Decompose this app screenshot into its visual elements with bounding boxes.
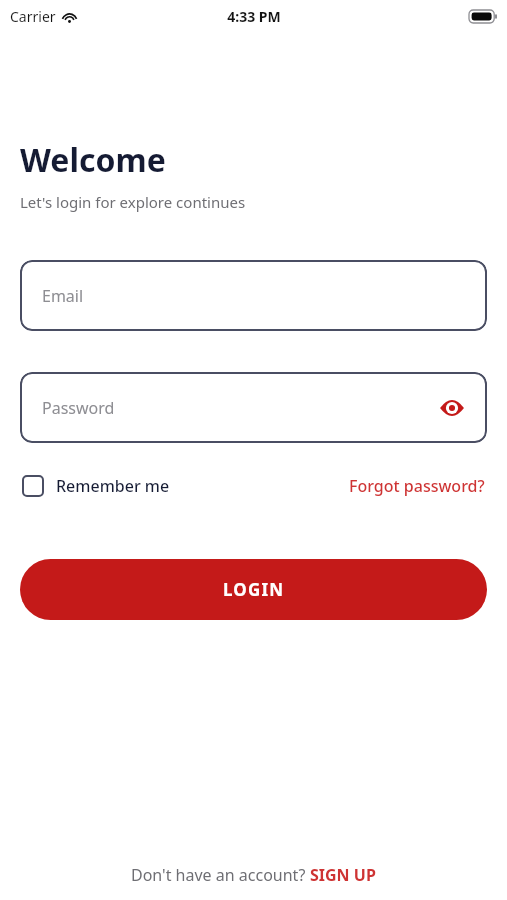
button[interactable]: LOGIN [20,559,487,620]
button[interactable]: Password [20,372,487,443]
staticText: Let's login for explore continues [20,192,246,212]
staticText: Remember me [56,475,170,497]
staticText: SIGN UP [310,864,376,886]
staticText: LOGIN [223,578,285,601]
staticText: Don't have an account? [131,864,310,886]
staticText: 4:33 PM [227,7,281,26]
button[interactable]: Forgot password? [347,471,487,501]
staticText: Carrier [10,7,56,26]
staticText: Welcome [20,138,166,182]
staticText: Forgot password? [349,475,485,497]
button[interactable]: Remember me [20,471,172,501]
button[interactable]: Show password [435,391,469,425]
staticText: Password [42,397,115,419]
button[interactable]: Email [20,260,487,331]
staticText: Email [42,285,84,307]
button[interactable]: SIGN UP [310,860,376,890]
